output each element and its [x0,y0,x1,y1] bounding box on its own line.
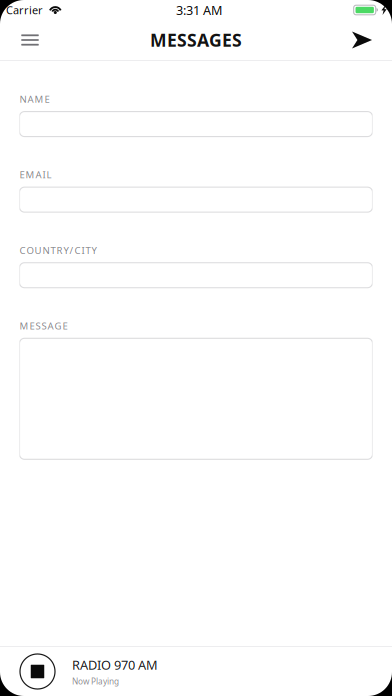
button[interactable]: Menu [8,20,52,60]
button[interactable]: M E S S A G E [19,319,372,459]
staticText: RADIO 970 AM [72,656,158,674]
staticText: MESSAGES [150,28,242,52]
button[interactable]: C O U N T R Y / C I T Y [19,244,372,288]
staticText: Now Playing [72,676,119,687]
staticText: N A M E [19,92,49,106]
staticText: Carrier [6,3,43,17]
button[interactable]: N A M E [19,92,372,137]
staticText: M E S S A G E [19,319,67,332]
button[interactable]: Send [340,20,384,60]
staticText: C O U N T R Y / C I T Y [19,244,96,257]
button[interactable]: RADIO 970 AM [72,656,252,687]
button[interactable]: E M A I L [19,168,372,212]
button[interactable]: Stop [15,649,60,694]
staticText: E M A I L [19,168,51,181]
staticText: 3:31 AM [176,1,222,19]
